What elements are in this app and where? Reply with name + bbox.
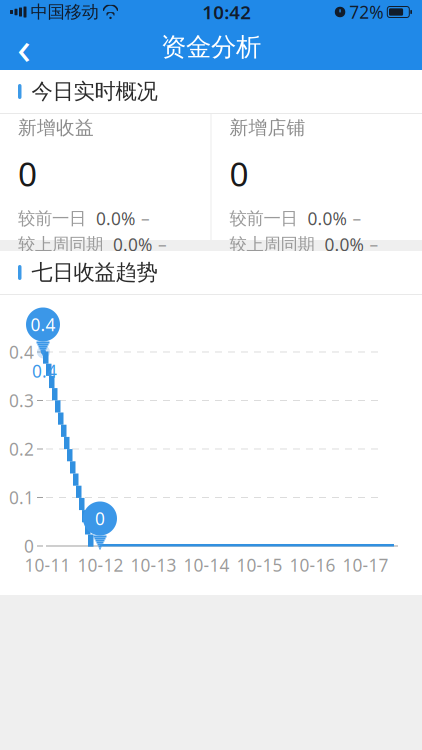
staticText: 0.4	[32, 359, 57, 382]
staticText: 新增收益	[18, 116, 94, 139]
staticText: –	[158, 233, 167, 256]
staticText: 10-17	[342, 553, 388, 576]
staticText: 0.0%	[113, 233, 152, 256]
staticText: 0	[229, 151, 248, 196]
staticText: 0.1	[9, 486, 34, 509]
staticText: 新增店铺	[229, 116, 305, 139]
staticText: 0.0%	[307, 207, 346, 230]
button[interactable]: Back	[0, 24, 50, 70]
staticText: 今日实时概况	[31, 78, 157, 105]
staticText: 10-16	[289, 553, 335, 576]
staticText: 0	[18, 151, 37, 196]
staticText: 较上周同期	[18, 234, 103, 255]
staticText: 0.2	[9, 437, 34, 460]
staticText: 10-14	[183, 553, 229, 576]
staticText: –	[352, 207, 361, 230]
staticText: 72%	[349, 0, 383, 23]
staticText: 10-15	[236, 553, 282, 576]
staticText: 较前一日	[18, 208, 86, 229]
staticText: 10:42	[202, 0, 251, 24]
staticText: 0	[95, 507, 105, 530]
staticText: 0.0%	[96, 207, 135, 230]
staticText: 0.4	[9, 340, 34, 363]
staticText: 10-11	[24, 553, 70, 576]
staticText: –	[369, 233, 378, 256]
staticText: 较前一日	[229, 208, 297, 229]
staticText: ‹	[17, 17, 31, 77]
staticText: 0.4	[30, 313, 55, 336]
staticText: 中国移动	[30, 1, 98, 23]
staticText: 较上周同期	[229, 234, 314, 255]
staticText: –	[141, 207, 150, 230]
staticText: 0.0%	[324, 233, 363, 256]
staticText: 七日收益趋势	[31, 259, 157, 286]
staticText: 0	[24, 534, 34, 557]
staticText: 10-13	[130, 553, 176, 576]
staticText: 0.3	[9, 389, 34, 412]
staticText: 资金分析	[161, 31, 261, 62]
staticText: 10-12	[77, 553, 123, 576]
